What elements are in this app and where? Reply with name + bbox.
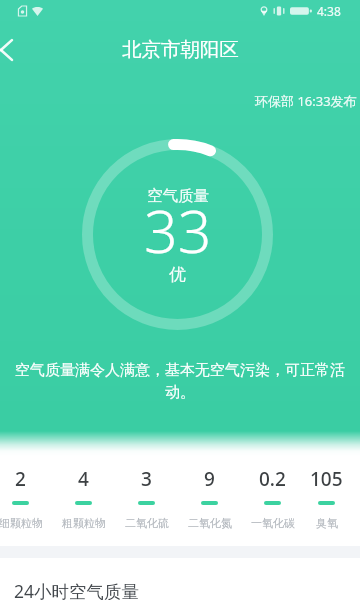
staticText: 优 [169,264,186,285]
staticText: 二氧化氮 [188,516,232,530]
staticText: 臭氧 [316,516,338,530]
button[interactable]: 105 [304,466,349,530]
staticText: 33 [144,190,212,270]
staticText: 空气质量 [147,186,209,206]
staticText: 北京市朝阳区 [122,37,239,62]
button[interactable]: 9 [178,466,241,530]
staticText: 2 [15,466,26,492]
button[interactable]: 0.2 [241,466,304,530]
staticText: 3 [141,466,152,492]
staticText: 二氧化硫 [125,516,169,530]
staticText: 9 [204,466,215,492]
staticText: 细颗粒物 [0,516,43,530]
button[interactable]: 3 [115,466,178,530]
staticText: 4 [78,466,89,492]
staticText: 环保部 16:33发布 [255,92,357,110]
button[interactable]: 4 [52,466,115,530]
button[interactable]: 2 [0,466,52,530]
staticText: 粗颗粒物 [62,516,106,530]
staticText: 0.2 [259,466,286,492]
staticText: 24小时空气质量 [14,579,140,600]
staticText: 105 [310,466,343,492]
button[interactable]: Back [0,22,44,66]
staticText: 空气质量满令人满意，基本无空气污染，可正常活动。 [14,361,346,401]
staticText: 4:38 [317,3,341,19]
staticText: 一氧化碳 [251,516,295,530]
